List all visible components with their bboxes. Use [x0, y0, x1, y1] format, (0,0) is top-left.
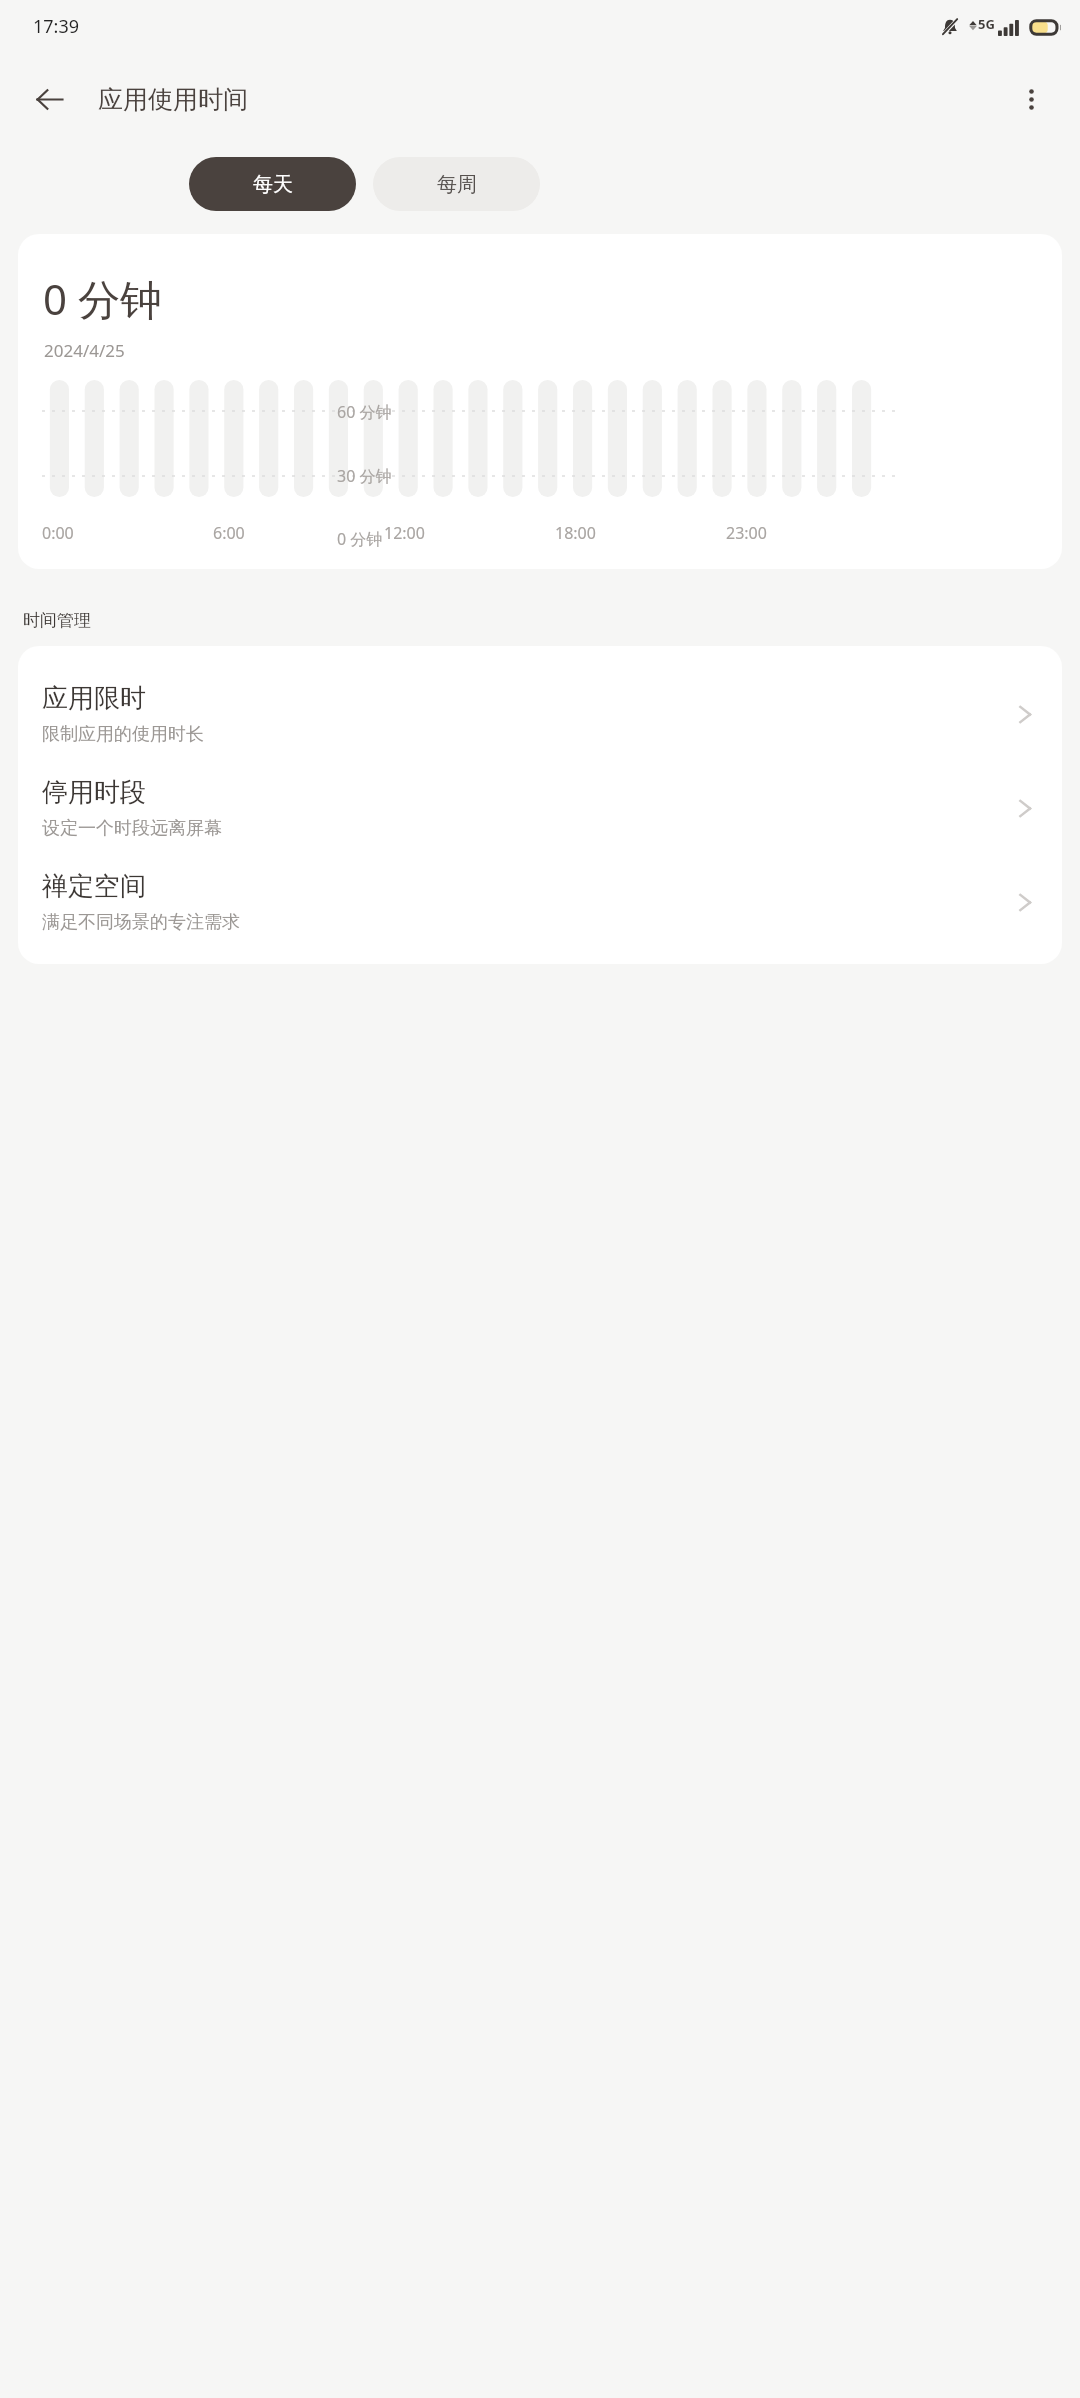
staticText: 2024/4/25	[44, 339, 125, 362]
button[interactable]: 禅定空间	[18, 840, 1062, 934]
staticText: 时间管理	[23, 610, 91, 631]
button[interactable]: 应用限时	[18, 646, 1062, 746]
staticText: 每周	[437, 172, 477, 197]
staticText: 6:00	[213, 522, 245, 544]
staticText: 满足不同场景的专注需求	[42, 911, 240, 934]
button[interactable]: Back	[22, 72, 76, 126]
staticText: 限制应用的使用时长	[42, 723, 204, 746]
staticText: 设定一个时段远离屏幕	[42, 817, 222, 840]
button[interactable]: 停用时段	[18, 746, 1062, 840]
staticText: 0 分钟	[337, 528, 383, 550]
button[interactable]: 每天	[189, 157, 356, 211]
staticText: 每天	[253, 172, 293, 197]
staticText: 0 分钟	[43, 270, 162, 327]
button[interactable]: 0 分钟	[18, 234, 1062, 569]
staticText: 禅定空间	[42, 870, 146, 903]
staticText: 应用使用时间	[98, 84, 248, 115]
staticText: 17:39	[33, 14, 80, 39]
staticText: 0:00	[42, 522, 74, 544]
staticText: 30 分钟	[337, 465, 392, 487]
button[interactable]: More options	[1004, 72, 1058, 126]
staticText: 60 分钟	[337, 401, 392, 423]
staticText: 5G	[978, 15, 995, 33]
button[interactable]: 每周	[373, 157, 540, 211]
staticText: 应用限时	[42, 682, 146, 715]
staticText: 18:00	[555, 522, 596, 544]
staticText: 23:00	[726, 522, 767, 544]
staticText: 12:00	[384, 522, 425, 544]
staticText: 停用时段	[42, 776, 146, 809]
